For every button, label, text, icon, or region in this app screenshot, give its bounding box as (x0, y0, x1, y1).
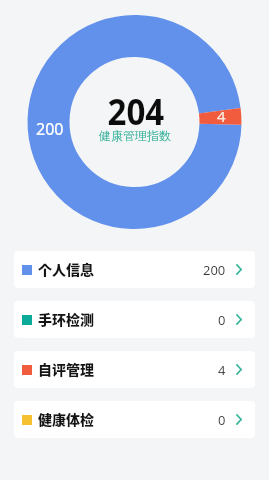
button[interactable]: 手环检测 (14, 301, 255, 338)
staticText: 204 (107, 87, 164, 136)
staticText: 200 (36, 118, 64, 140)
button[interactable]: 个人信息 (14, 251, 255, 288)
staticText: 健康管理指数 (99, 128, 171, 143)
other: Open 手环检测 (236, 314, 242, 325)
staticText: 4 (218, 361, 226, 379)
staticText: 手环检测 (38, 309, 94, 329)
staticText: 4 (217, 106, 226, 126)
staticText: 健康体检 (38, 409, 94, 429)
other: Open 健康体检 (236, 414, 242, 425)
staticText: 0 (218, 311, 226, 329)
button[interactable]: 自评管理 (14, 351, 255, 388)
other: Open 个人信息 (236, 264, 242, 275)
staticText: 自评管理 (38, 359, 94, 379)
other: Open 自评管理 (236, 364, 242, 375)
staticText: 0 (218, 411, 226, 429)
staticText: 200 (203, 261, 226, 279)
staticText: 个人信息 (38, 259, 94, 279)
button[interactable]: 健康体检 (14, 401, 255, 438)
